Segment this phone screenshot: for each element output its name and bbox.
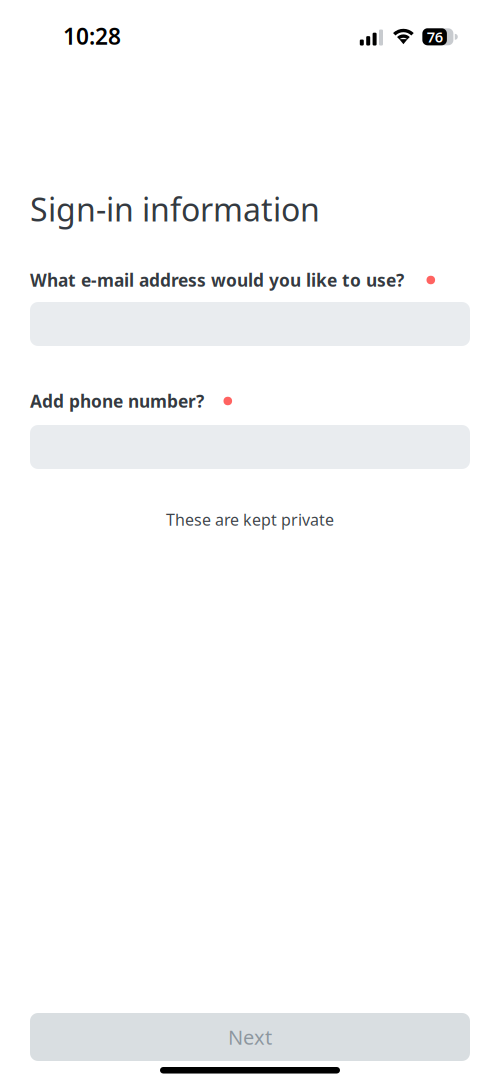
staticText: Sign-in information: [30, 188, 320, 230]
staticText: 10:28: [63, 21, 121, 51]
staticText: These are kept private: [166, 509, 334, 530]
staticText: 76: [427, 27, 443, 47]
staticText: What e-mail address would you like to us…: [30, 268, 404, 291]
staticText: Add phone number?: [30, 389, 204, 412]
staticText: Next: [228, 1024, 272, 1050]
button[interactable]: Next: [30, 1013, 470, 1061]
